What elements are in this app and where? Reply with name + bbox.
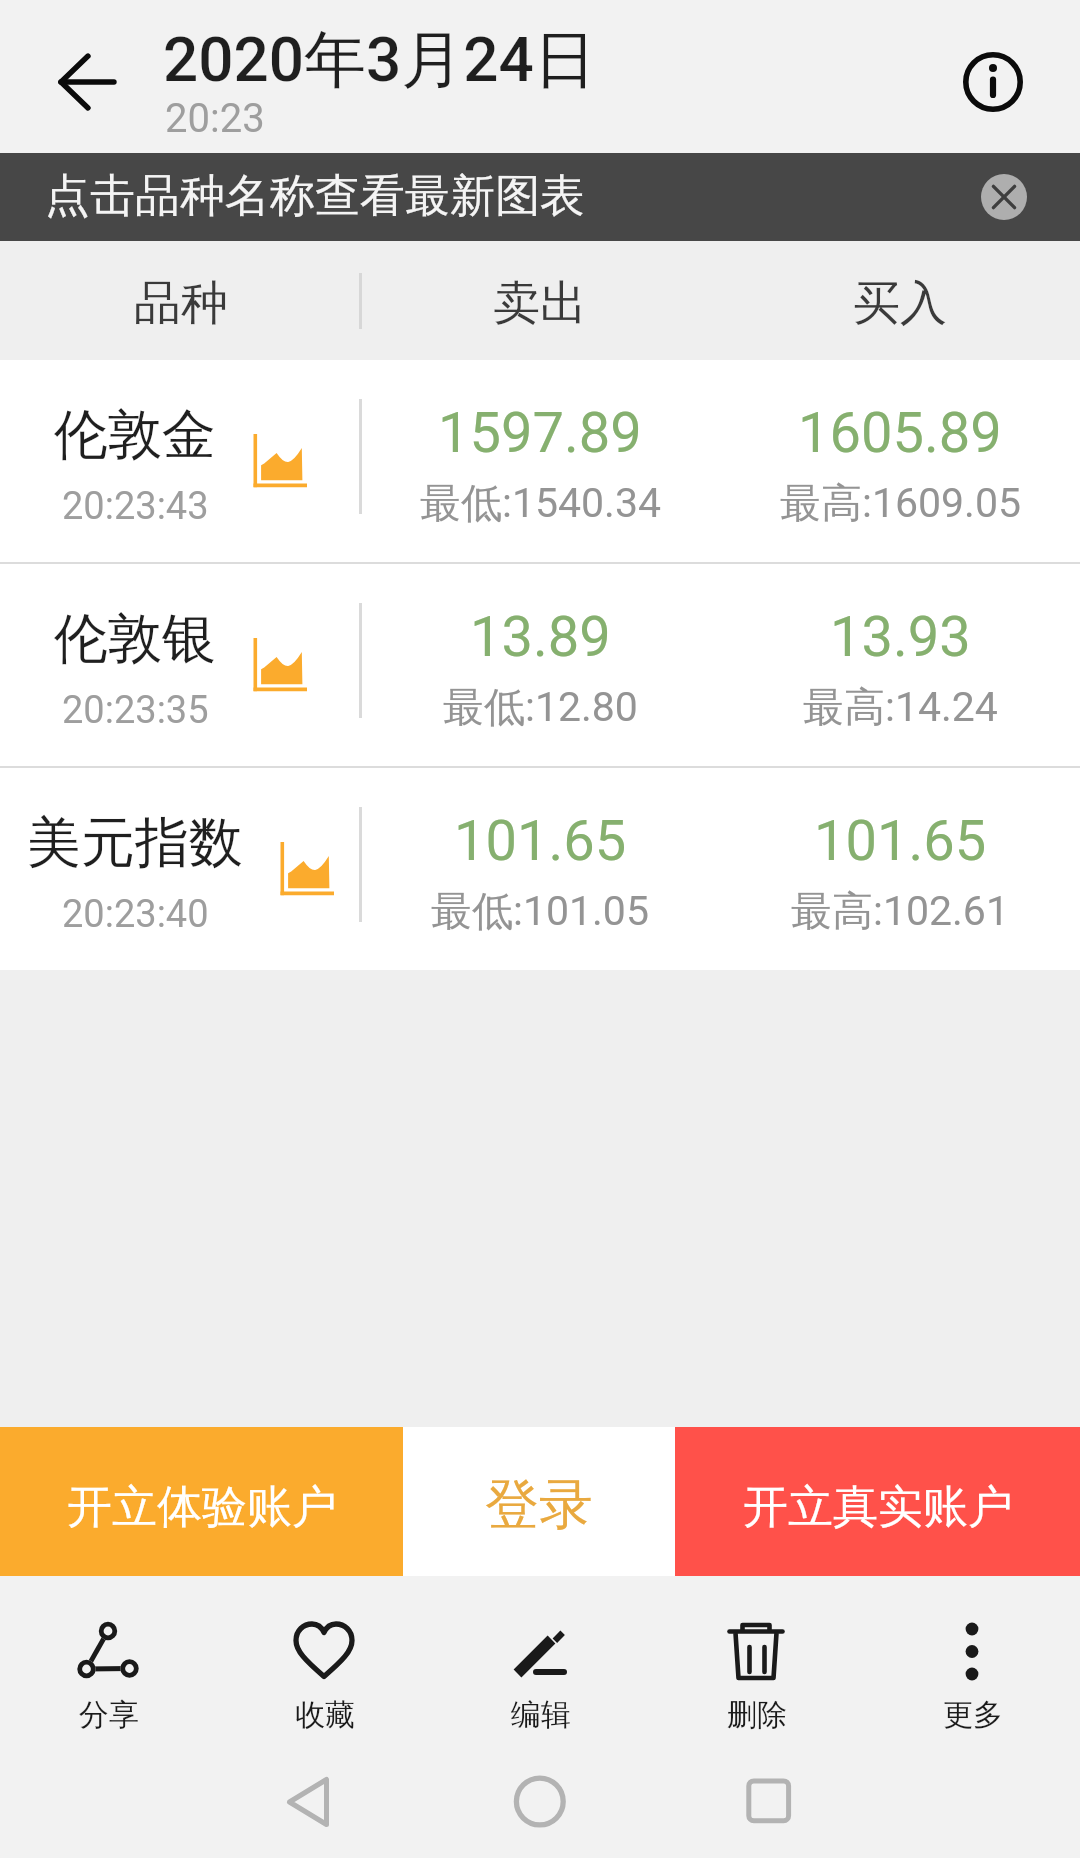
staticText: 1605.89: [798, 400, 1002, 466]
staticText: 编辑: [511, 1696, 571, 1734]
staticText: 最低:1540.34: [420, 478, 661, 530]
button[interactable]: 开立真实账户: [675, 1427, 1080, 1576]
button[interactable]: Edit: [432, 1576, 648, 1756]
staticText: 卖出: [493, 274, 587, 333]
staticText: 伦敦银: [54, 605, 216, 673]
staticText: 品种: [134, 274, 228, 333]
button[interactable]: 美元指数: [0, 768, 1080, 970]
button[interactable]: 登录: [403, 1427, 675, 1576]
staticText: 101.65: [814, 808, 987, 874]
staticText: 20:23:35: [62, 688, 209, 733]
staticText: 点击品种名称查看最新图表: [45, 168, 585, 225]
staticText: 1597.89: [438, 400, 642, 466]
staticText: 美元指数: [27, 809, 243, 877]
button[interactable]: Close: [968, 161, 1040, 233]
button[interactable]: More: [864, 1576, 1080, 1756]
button[interactable]: 伦敦金: [0, 360, 1080, 562]
button[interactable]: Favourite: [216, 1576, 432, 1756]
staticText: 删除: [727, 1696, 787, 1734]
button[interactable]: 开立体验账户: [0, 1427, 403, 1576]
staticText: 最高:1609.05: [780, 478, 1021, 530]
button[interactable]: Back: [31, 26, 143, 138]
staticText: 买入: [853, 274, 947, 333]
staticText: 最高:14.24: [803, 682, 998, 734]
staticText: 登录: [485, 1471, 593, 1539]
staticText: 20:23:40: [62, 892, 209, 937]
button[interactable]: Delete: [648, 1576, 864, 1756]
staticText: 2020年3月24日: [163, 21, 596, 99]
staticText: 20:23: [165, 95, 265, 142]
staticText: 最高:102.61: [791, 886, 1009, 938]
button[interactable]: Share: [0, 1576, 216, 1756]
staticText: 13.93: [830, 604, 971, 670]
staticText: 101.65: [454, 808, 627, 874]
staticText: 分享: [79, 1696, 139, 1734]
staticText: 最低:12.80: [443, 682, 638, 734]
staticText: 收藏: [295, 1696, 355, 1734]
staticText: 13.89: [470, 604, 611, 670]
button[interactable]: Info: [937, 26, 1049, 138]
staticText: 更多: [943, 1696, 1003, 1734]
staticText: 20:23:43: [62, 484, 209, 529]
staticText: 最低:101.05: [431, 886, 649, 938]
staticText: 伦敦金: [54, 401, 216, 469]
button[interactable]: 伦敦银: [0, 564, 1080, 766]
staticText: 开立真实账户: [743, 1479, 1013, 1536]
staticText: 开立体验账户: [67, 1479, 337, 1536]
